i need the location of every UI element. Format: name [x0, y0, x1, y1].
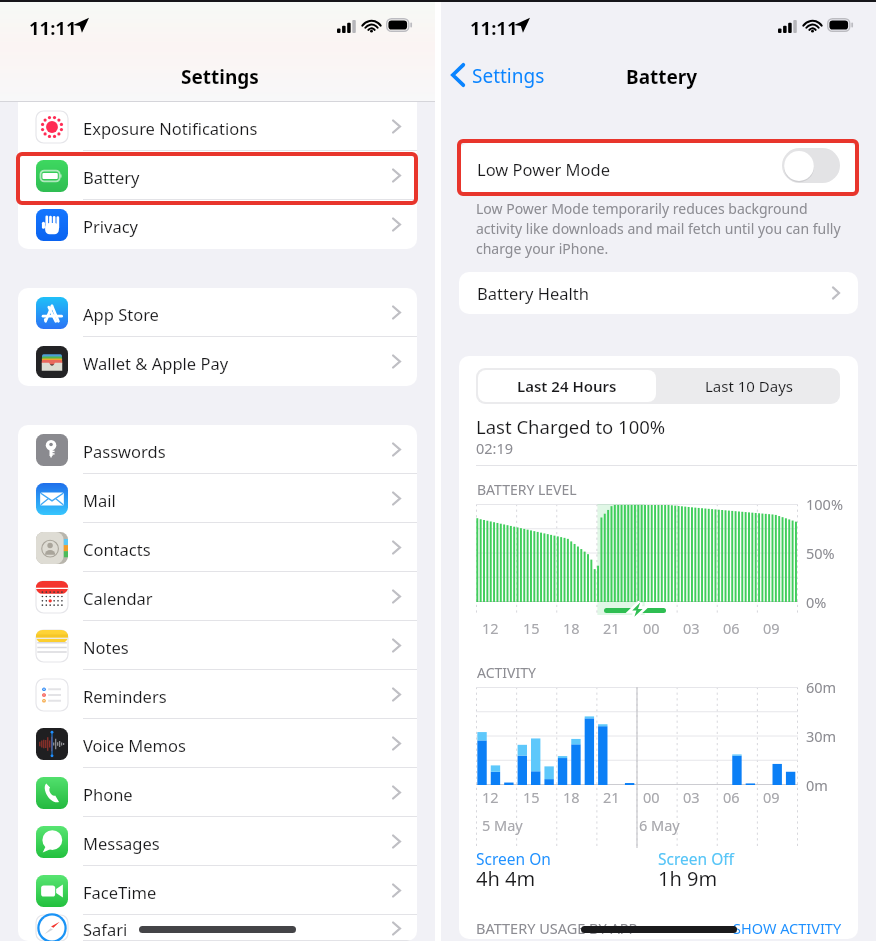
staticText: Battery Health: [477, 282, 589, 304]
staticText: 0%: [806, 592, 827, 612]
staticText: ACTIVITY: [477, 663, 536, 682]
button[interactable]: Phone: [18, 768, 417, 817]
staticText: Messages: [83, 832, 160, 854]
staticText: BATTERY USAGE BY APP: [476, 918, 638, 938]
staticText: 18: [563, 618, 580, 638]
button[interactable]: Wallet & Apple Pay: [18, 337, 417, 386]
button[interactable]: Passwords: [18, 425, 417, 474]
staticText: 1h 9m: [658, 865, 718, 892]
staticText: 00: [643, 618, 660, 638]
staticText: Last Charged to 100%: [476, 414, 666, 439]
staticText: 02:19: [476, 438, 514, 458]
staticText: Privacy: [83, 215, 139, 237]
staticText: 06: [723, 787, 740, 807]
button[interactable]: Battery: [18, 151, 417, 200]
button[interactable]: Low Power Mode: [459, 143, 858, 194]
button[interactable]: Battery Health: [459, 272, 858, 314]
button[interactable]: Voice Memos: [18, 719, 417, 768]
staticText: 6 May: [639, 815, 680, 835]
staticText: 50%: [806, 543, 835, 563]
button[interactable]: FaceTime: [18, 866, 417, 915]
button[interactable]: Privacy: [18, 200, 417, 249]
staticText: 0m: [806, 775, 828, 795]
staticText: Wallet & Apple Pay: [83, 352, 229, 374]
staticText: 12: [482, 787, 499, 807]
button[interactable]: Safari: [18, 915, 417, 941]
staticText: Settings: [181, 64, 259, 90]
staticText: 11:11: [470, 15, 518, 40]
staticText: 03: [683, 618, 700, 638]
staticText: App Store: [83, 303, 159, 325]
staticText: Safari: [83, 918, 128, 940]
staticText: 18: [563, 787, 580, 807]
button[interactable]: Contacts: [18, 523, 417, 572]
staticText: Mail: [83, 489, 116, 511]
staticText: FaceTime: [83, 881, 157, 903]
staticText: 12: [482, 618, 499, 638]
button[interactable]: Last 10 Days: [658, 368, 840, 404]
button[interactable]: App Store: [18, 288, 417, 337]
button[interactable]: Last 24 Hours: [478, 370, 656, 402]
staticText: Notes: [83, 636, 129, 658]
staticText: 11:11: [29, 15, 77, 40]
staticText: 00: [643, 787, 660, 807]
staticText: Battery: [626, 64, 698, 90]
button[interactable]: Reminders: [18, 670, 417, 719]
staticText: Last 10 Days: [705, 376, 794, 396]
staticText: 06: [723, 618, 740, 638]
staticText: 100%: [806, 494, 843, 514]
staticText: 21: [603, 787, 620, 807]
staticText: Low Power Mode temporarily reduces backg…: [476, 199, 841, 258]
staticText: 15: [523, 618, 540, 638]
button[interactable]: Exposure Notifications: [18, 102, 417, 151]
staticText: Exposure Notifications: [83, 117, 258, 139]
button[interactable]: Mail: [18, 474, 417, 523]
staticText: Phone: [83, 783, 133, 805]
staticText: Reminders: [83, 685, 167, 707]
staticText: Screen Off: [658, 848, 734, 869]
staticText: Settings: [472, 63, 545, 89]
button[interactable]: SHOW ACTIVITY: [733, 918, 842, 938]
staticText: Battery: [83, 166, 140, 188]
staticText: Screen On: [476, 848, 551, 869]
button[interactable]: Settings: [447, 59, 549, 91]
button[interactable]: Notes: [18, 621, 417, 670]
button[interactable]: Calendar: [18, 572, 417, 621]
staticText: 09: [763, 618, 780, 638]
staticText: Passwords: [83, 440, 166, 462]
staticText: Contacts: [83, 538, 151, 560]
staticText: Calendar: [83, 587, 153, 609]
staticText: 15: [523, 787, 540, 807]
staticText: 09: [763, 787, 780, 807]
staticText: 5 May: [482, 815, 523, 835]
staticText: Low Power Mode: [477, 158, 610, 180]
staticText: 4h 4m: [476, 865, 536, 892]
staticText: 60m: [806, 677, 837, 697]
staticText: 30m: [806, 726, 837, 746]
staticText: 03: [683, 787, 700, 807]
staticText: Last 24 Hours: [517, 376, 617, 396]
staticText: 21: [603, 618, 620, 638]
staticText: Voice Memos: [83, 734, 186, 756]
staticText: BATTERY LEVEL: [477, 480, 577, 499]
button[interactable]: Messages: [18, 817, 417, 866]
